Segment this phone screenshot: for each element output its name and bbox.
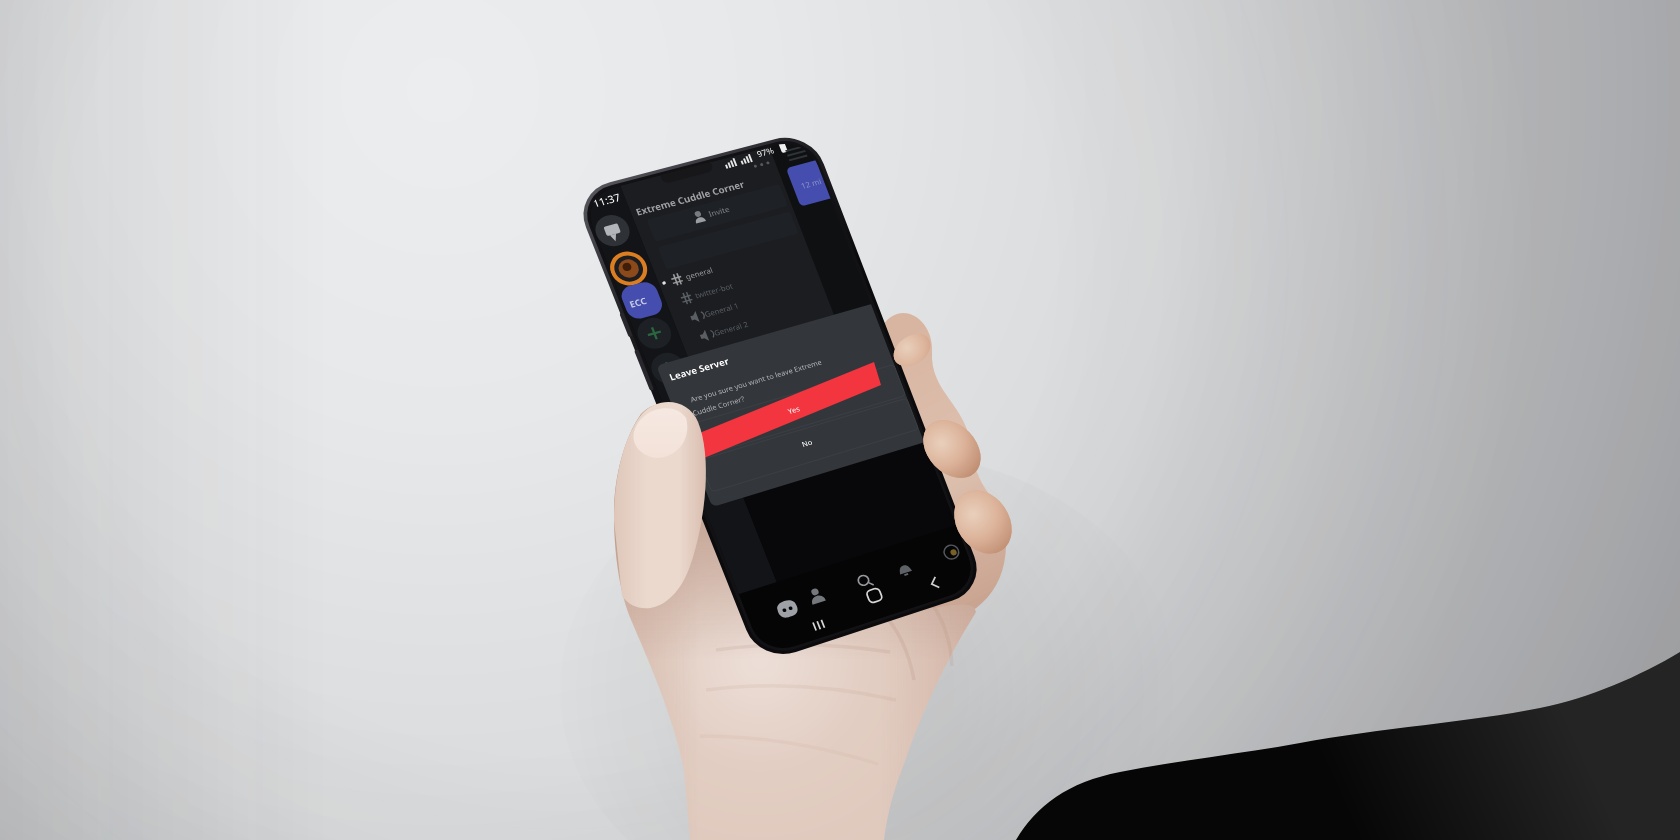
button[interactable]	[648, 204, 796, 230]
button[interactable]: Direct messages	[600, 212, 634, 246]
button[interactable]: Extreme Cuddle Corner server	[621, 279, 657, 315]
button[interactable]	[662, 248, 774, 270]
button[interactable]: Search	[844, 564, 878, 598]
button[interactable]	[690, 366, 880, 404]
button[interactable]	[672, 270, 784, 292]
button[interactable]	[688, 309, 800, 331]
button[interactable]: Notifications	[884, 550, 918, 584]
button[interactable]: Home	[768, 592, 802, 626]
button[interactable]	[702, 406, 892, 444]
button[interactable]: Friends	[800, 582, 834, 616]
button[interactable]	[680, 289, 792, 311]
button[interactable]: Server	[611, 245, 647, 281]
button[interactable]: Profile	[928, 530, 962, 564]
